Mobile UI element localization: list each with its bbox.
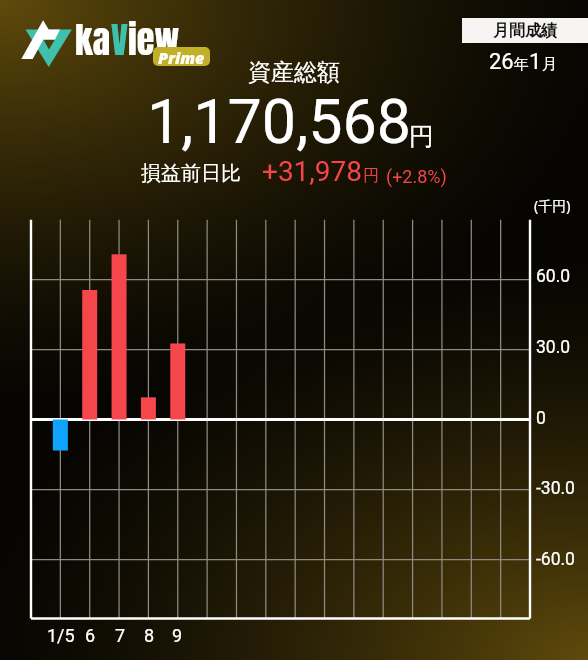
staticText: 損益前日比 bbox=[141, 161, 241, 186]
staticText: 9 bbox=[172, 625, 183, 646]
staticText: iew bbox=[128, 13, 180, 67]
staticText: 1,170,568 bbox=[147, 86, 411, 157]
staticText: 60.0 bbox=[536, 266, 571, 287]
staticText: 年 bbox=[514, 55, 529, 74]
staticText: 円 bbox=[409, 121, 434, 152]
staticText: 月 bbox=[542, 55, 557, 74]
staticText: 7 bbox=[115, 625, 126, 646]
staticText: -30.0 bbox=[536, 478, 575, 499]
staticText: 6 bbox=[85, 625, 96, 646]
staticText: 月間成績 bbox=[493, 21, 557, 41]
staticText: 1 bbox=[529, 49, 542, 75]
staticText: (+2.8%) bbox=[386, 166, 447, 187]
staticText: -60.0 bbox=[536, 549, 575, 570]
staticText: 26 bbox=[489, 49, 514, 75]
staticText: 1/5 bbox=[47, 625, 75, 646]
staticText: 8 bbox=[144, 625, 155, 646]
staticText: V bbox=[111, 13, 128, 67]
staticText: 円 bbox=[363, 166, 379, 186]
staticText: +31,978 bbox=[262, 155, 363, 188]
staticText: (千円) bbox=[534, 196, 571, 215]
button[interactable]: kaView Prime logo bbox=[12, 14, 74, 70]
button[interactable]: 月間成績 bbox=[462, 18, 588, 43]
staticText: 資産総額 bbox=[248, 58, 340, 87]
staticText: 30.0 bbox=[536, 337, 571, 358]
staticText: 0 bbox=[536, 408, 546, 429]
staticText: Prime bbox=[158, 47, 205, 66]
staticText: ka bbox=[75, 13, 111, 67]
